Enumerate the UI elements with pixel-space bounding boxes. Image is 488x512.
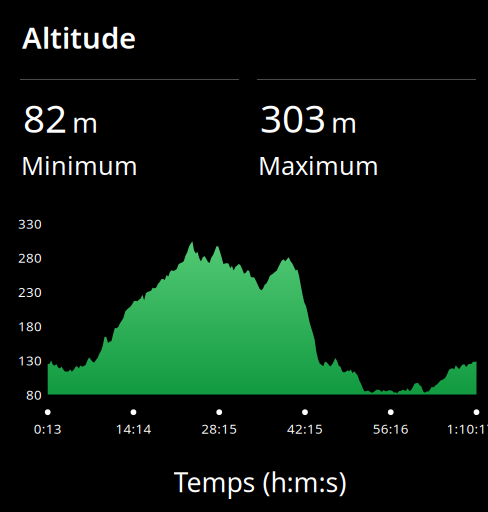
staticText: 303 (260, 92, 326, 143)
staticText: 82 (23, 92, 67, 143)
staticText: 130 (18, 351, 42, 369)
staticText: 280 (18, 249, 42, 266)
staticText: 0:13 (34, 420, 62, 437)
staticText: m (72, 103, 98, 140)
staticText: 42:15 (287, 420, 323, 437)
staticText: Altitude (22, 18, 136, 57)
staticText: 1:10:17 (446, 420, 488, 437)
staticText: 180 (18, 317, 42, 335)
staticText: m (331, 103, 357, 140)
staticText: 330 (18, 215, 42, 232)
staticText: 230 (18, 283, 42, 301)
staticText: Temps (h:m:s) (173, 464, 346, 500)
staticText: 14:14 (115, 420, 151, 437)
staticText: Maximum (258, 148, 379, 182)
staticText: 56:16 (373, 420, 409, 437)
staticText: 80 (26, 386, 42, 403)
staticText: Minimum (21, 148, 138, 182)
staticText: 28:15 (201, 420, 237, 437)
